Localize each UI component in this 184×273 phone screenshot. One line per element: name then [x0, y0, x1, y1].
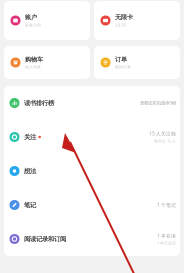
staticText: 账户 [25, 13, 37, 21]
button[interactable]: 读书排行榜 [4, 86, 180, 120]
button[interactable]: 阅读记录和订阅 [4, 222, 180, 256]
staticText: 余额 0.00 [25, 23, 41, 28]
button[interactable]: 笔记 [4, 188, 180, 222]
staticText: 想法 [24, 167, 36, 175]
staticText: 查看还未完成排行榜 [140, 100, 176, 106]
staticText: 我关注 16 人 [154, 138, 176, 144]
button[interactable]: 无限卡 [94, 1, 180, 40]
staticText: 笔记 [24, 201, 36, 209]
button[interactable]: 购物车 [4, 46, 90, 79]
staticText: 订单 [115, 56, 127, 63]
staticText: 阅读记录和订阅 [24, 235, 66, 243]
button[interactable]: 想法 [4, 154, 180, 188]
staticText: 读书排行榜 [24, 99, 54, 107]
staticText: 1 个笔记 [157, 202, 176, 208]
staticText: 15 人关注我 [149, 130, 176, 137]
button[interactable]: 订单 [94, 46, 180, 79]
staticText: 我的订单 [115, 65, 131, 69]
button[interactable]: 账户 [4, 1, 90, 40]
button[interactable]: 关注 [4, 120, 180, 154]
staticText: 无限卡 [115, 13, 133, 21]
staticText: 关注 [24, 133, 36, 141]
staticText: 1 本已读完 [157, 240, 176, 246]
staticText: 购物车 [25, 56, 43, 63]
staticText: 2月5天 [115, 23, 127, 28]
staticText: 1 本在读 [157, 232, 176, 239]
staticText: 加入书籍 [25, 65, 41, 69]
